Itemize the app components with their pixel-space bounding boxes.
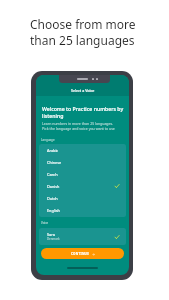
other: Selected [114, 183, 120, 189]
staticText: Arabic [47, 148, 59, 153]
staticText: CONTINUE [71, 252, 90, 256]
staticText: Voice [41, 221, 49, 225]
staticText: listening [42, 112, 64, 119]
button[interactable]: Chinese [39, 156, 126, 168]
button[interactable]: Sara [39, 228, 126, 245]
button[interactable]: Dutch [39, 192, 126, 204]
other: Selected [114, 234, 120, 240]
staticText: Dutch [47, 196, 58, 201]
staticText: Select a Voice [71, 88, 95, 93]
staticText: English [47, 208, 60, 213]
staticText: Czech [47, 172, 58, 177]
staticText: Choose from more [30, 16, 136, 32]
staticText: Denmark [47, 237, 60, 241]
button[interactable]: English [39, 204, 126, 216]
button[interactable]: Arabic [39, 144, 126, 156]
staticText: Welcome to Practice numbers by [42, 105, 124, 112]
staticText: Language [41, 138, 55, 142]
staticText: than 25 languages [30, 32, 135, 48]
staticText: Chinese [47, 160, 62, 165]
button[interactable]: CONTINUE [41, 248, 124, 259]
button[interactable]: Czech [39, 168, 126, 180]
staticText: Learn numbers in more than 25 languages. [42, 121, 114, 126]
button[interactable]: Danish [39, 180, 126, 192]
staticText: Danish [47, 184, 60, 189]
staticText: Sara [47, 232, 55, 237]
staticText: Pick the language and voice you want to … [42, 126, 115, 131]
